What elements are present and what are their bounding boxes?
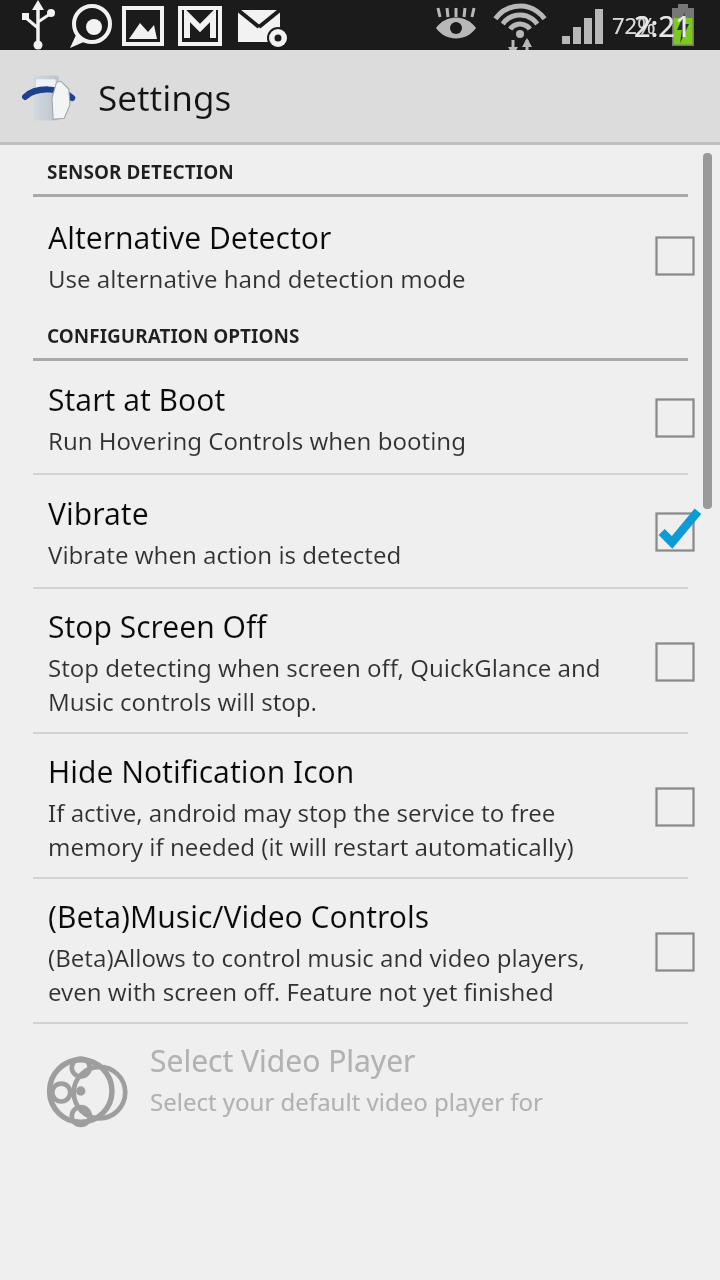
staticText: Use alternative hand detection mode [48,262,466,295]
button[interactable]: Start at Boot [0,361,720,473]
staticText: SENSOR DETECTION [47,159,234,185]
button[interactable]: Checked [644,501,706,563]
button[interactable]: Alternative Detector [0,197,720,309]
staticText: If active, android may stop the service … [48,796,632,863]
staticText: 72% [612,10,656,40]
button[interactable]: Unchecked [644,387,706,449]
staticText: Vibrate when action is detected [48,538,402,571]
button[interactable]: Unchecked [644,921,706,983]
staticText: CONFIGURATION OPTIONS [47,323,300,349]
staticText: 2:21 [634,6,692,45]
staticText: Hide Notification Icon [48,751,355,792]
button[interactable]: Unchecked [644,631,706,693]
button[interactable]: Unchecked [644,225,706,287]
button[interactable]: Select Video Player [0,1024,720,1118]
staticText: Alternative Detector [48,217,332,258]
button[interactable]: (Beta)Music/Video Controls [0,879,720,1022]
staticText: Select Video Player [150,1040,416,1081]
staticText: Stop Screen Off [48,606,267,647]
button[interactable]: Unchecked [644,776,706,838]
staticText: Start at Boot [48,379,226,420]
staticText: Select your default video player for [150,1085,544,1118]
staticText: (Beta)Music/Video Controls [48,896,430,937]
button[interactable]: Vibrate [0,475,720,587]
button[interactable]: Hide Notification Icon [0,734,720,877]
staticText: Stop detecting when screen off, QuickGla… [48,651,632,718]
staticText: Vibrate [48,493,149,534]
staticText: (Beta)Allows to control music and video … [48,941,632,1008]
button[interactable]: Stop Screen Off [0,589,720,732]
staticText: Run Hovering Controls when booting [48,424,466,457]
staticText: Settings [98,74,232,122]
